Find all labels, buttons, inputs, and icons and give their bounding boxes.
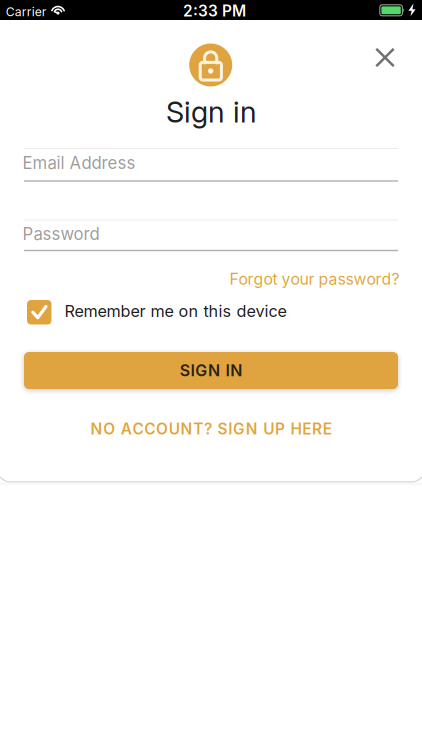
staticText: Sign in (166, 95, 257, 129)
button[interactable]: Close (363, 35, 407, 79)
button[interactable]: Remember me on this device (24, 289, 398, 333)
button[interactable]: SIGN IN (24, 352, 398, 389)
staticText: NO ACCOUNT? SIGN UP HERE (90, 420, 332, 438)
button[interactable]: Forgot your password? (25, 264, 399, 294)
staticText: Remember me on this device (64, 302, 286, 321)
staticText: Email Address (22, 153, 135, 173)
button[interactable]: Email Address (24, 143, 398, 187)
staticText: Forgot your password? (229, 270, 399, 288)
staticText: SIGN IN (180, 361, 242, 380)
button[interactable]: Password (24, 214, 398, 258)
staticText: Password (22, 224, 99, 244)
button[interactable]: NO ACCOUNT? SIGN UP HERE (24, 414, 398, 444)
staticText: Carrier (6, 4, 47, 19)
staticText: 2:33 PM (183, 2, 246, 20)
